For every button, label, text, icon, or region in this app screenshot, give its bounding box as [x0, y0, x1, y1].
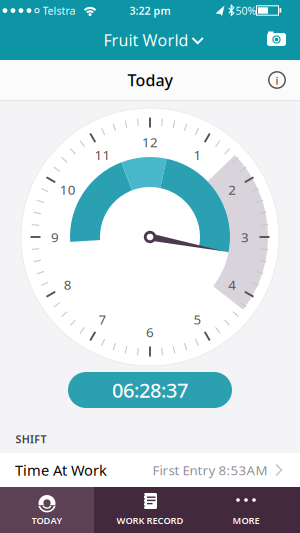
button[interactable]: TODAY — [0, 487, 100, 533]
staticText: SHIFT — [15, 432, 47, 446]
staticText: 8 — [64, 276, 72, 293]
staticText: Time At Work — [15, 460, 107, 480]
staticText: Fruit World — [103, 29, 188, 51]
staticText: MORE — [232, 514, 259, 527]
staticText: 11 — [94, 146, 110, 164]
staticText: Telstra — [42, 3, 75, 18]
staticText: 50% — [235, 3, 256, 18]
staticText: 6 — [146, 323, 154, 341]
staticText: First Entry 8:53AM — [152, 461, 267, 479]
staticText: 3:22 pm — [129, 3, 170, 18]
staticText: 2 — [228, 181, 236, 198]
button[interactable]: 06:28:37 — [68, 372, 232, 408]
button[interactable]: MORE — [200, 487, 300, 533]
staticText: i — [275, 73, 278, 88]
button[interactable]: Time At Work — [0, 453, 300, 487]
staticText: WORK RECORD — [116, 514, 183, 527]
staticText: Today — [127, 69, 172, 91]
staticText: TODAY — [31, 514, 62, 527]
button[interactable]: Info — [267, 70, 287, 90]
staticText: 06:28:37 — [112, 377, 188, 403]
staticText: 1 — [193, 146, 201, 164]
button[interactable]: Camera — [263, 29, 289, 49]
staticText: 3 — [241, 228, 249, 246]
button[interactable]: WORK RECORD — [100, 487, 200, 533]
staticText: 5 — [193, 310, 201, 328]
staticText: 9 — [51, 228, 59, 246]
staticText: 12 — [142, 133, 158, 151]
staticText: 4 — [228, 276, 236, 293]
staticText: 10 — [60, 181, 76, 198]
staticText: 7 — [98, 310, 106, 328]
